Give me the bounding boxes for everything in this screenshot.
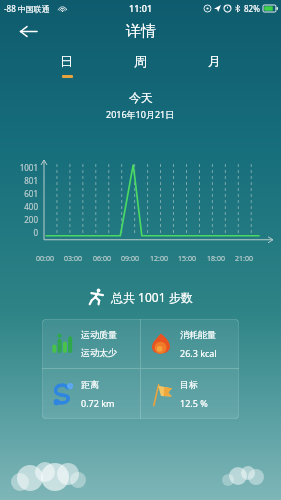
staticText: 400	[24, 201, 38, 212]
staticText: -88 中国联通	[4, 3, 50, 14]
staticText: 目标	[180, 379, 198, 390]
staticText: 21:00	[235, 254, 253, 264]
button[interactable]: 日	[30, 47, 103, 75]
staticText: 12:00	[150, 254, 168, 264]
button[interactable]: 运动质量	[42, 319, 140, 368]
staticText: 03:00	[64, 254, 82, 264]
button[interactable]: 消耗能量	[141, 319, 239, 368]
staticText: 82%	[244, 3, 260, 14]
staticText: 15:00	[178, 254, 196, 264]
staticText: 1001	[19, 162, 38, 173]
button[interactable]: 月	[177, 47, 251, 75]
staticText: 运动质量	[81, 329, 117, 340]
staticText: 周	[134, 53, 147, 69]
button[interactable]: 目标	[141, 369, 239, 419]
staticText: 09:00	[121, 254, 139, 264]
staticText: 06:00	[93, 254, 111, 264]
staticText: 601	[24, 188, 38, 199]
button[interactable]: Back	[10, 16, 46, 47]
staticText: 26.3 kcal	[180, 347, 217, 359]
button[interactable]: 距离	[42, 369, 140, 419]
staticText: 0	[33, 227, 38, 238]
staticText: 2016年10月21日	[106, 108, 175, 120]
staticText: 200	[24, 214, 38, 225]
staticText: 12.5 %	[180, 397, 208, 409]
staticText: 日	[60, 53, 73, 69]
staticText: 11:01	[129, 2, 153, 14]
staticText: 距离	[81, 379, 99, 390]
button[interactable]: 周	[103, 47, 177, 75]
staticText: 00:00	[36, 254, 54, 264]
staticText: 18:00	[207, 254, 225, 264]
staticText: 801	[24, 175, 38, 186]
staticText: 月	[208, 53, 221, 69]
staticText: 运动太少	[81, 347, 117, 358]
staticText: 0.72 km	[81, 397, 115, 409]
staticText: 今天	[129, 90, 153, 105]
staticText: 消耗能量	[180, 329, 216, 340]
staticText: 总共 1001 步数	[111, 289, 193, 305]
staticText: 详情	[126, 22, 156, 41]
